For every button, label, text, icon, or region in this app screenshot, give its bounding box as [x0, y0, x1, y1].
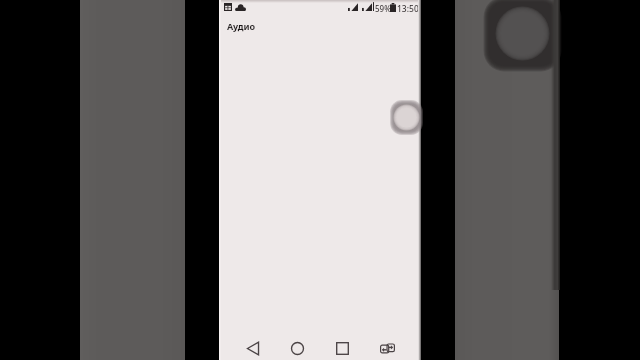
staticText: Аудио — [227, 20, 256, 32]
button[interactable]: Recent apps — [325, 330, 359, 360]
staticText: 59% — [375, 3, 391, 14]
button[interactable]: Home — [280, 330, 314, 360]
staticText: 13:50 — [397, 3, 419, 15]
button[interactable]: Back — [236, 330, 270, 360]
button[interactable]: Split screen — [370, 330, 404, 360]
button[interactable]: Recording control — [390, 100, 424, 134]
